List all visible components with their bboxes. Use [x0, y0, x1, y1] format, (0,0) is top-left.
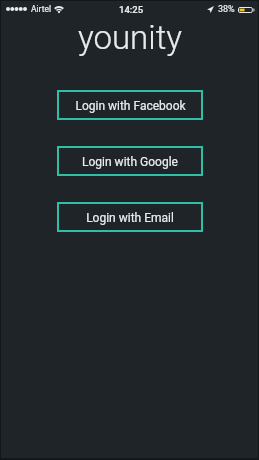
- button[interactable]: Login with Email: [57, 202, 203, 232]
- staticText: 38%: [218, 4, 235, 15]
- staticText: Airtel: [31, 4, 52, 14]
- button[interactable]: Login with Facebook: [57, 90, 203, 120]
- staticText: Login with Google: [82, 155, 178, 169]
- staticText: Login with Email: [86, 211, 174, 225]
- button[interactable]: Login with Google: [57, 146, 203, 176]
- staticText: Login with Facebook: [75, 99, 186, 113]
- staticText: younity: [78, 18, 182, 57]
- staticText: 14:25: [119, 4, 144, 15]
